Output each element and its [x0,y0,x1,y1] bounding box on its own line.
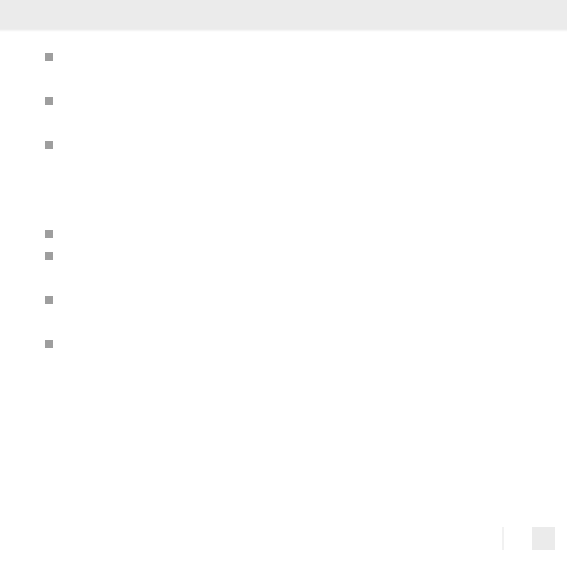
button[interactable]: Item 7 [0,340,567,384]
button[interactable]: Item 3 [0,141,567,185]
button[interactable]: Item 5 [0,252,567,296]
button[interactable]: Item 4 [0,230,567,252]
button[interactable]: Item 6 [0,296,567,340]
button[interactable]: Item 2 [0,97,567,141]
button[interactable]: Item 1 [0,53,567,97]
